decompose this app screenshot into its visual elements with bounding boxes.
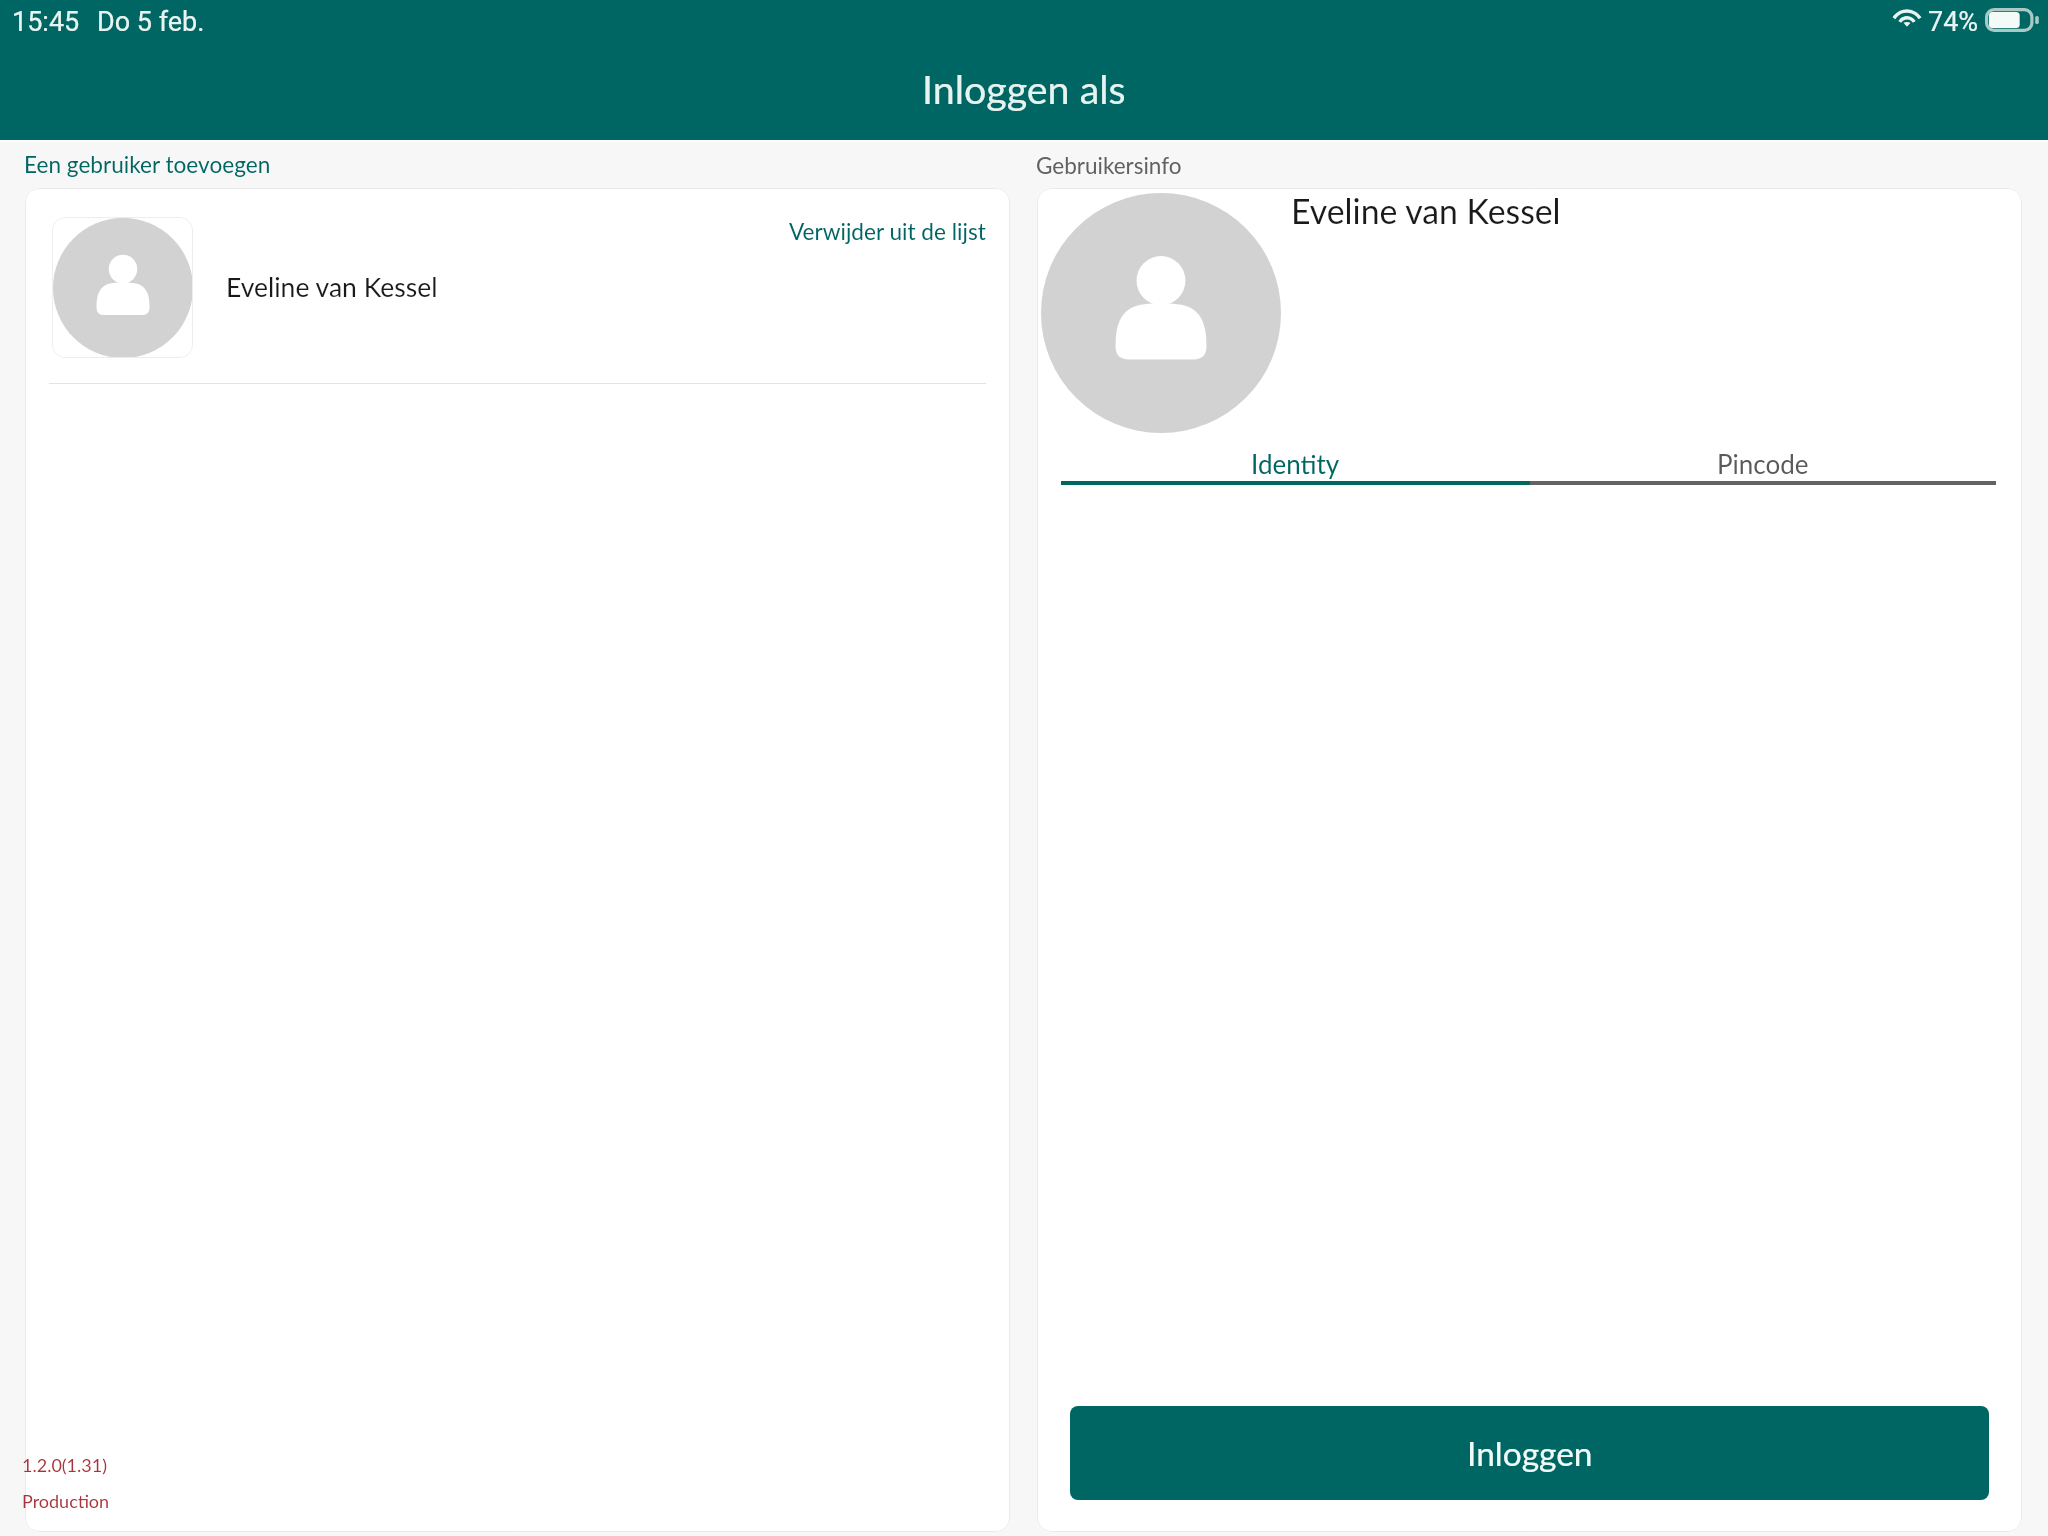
staticText: Verwijder uit de lijst (789, 218, 986, 245)
staticText: Eveline van Kessel (226, 271, 438, 303)
staticText: Gebruikersinfo (1036, 152, 1182, 179)
staticText: Inloggen als (922, 65, 1126, 112)
staticText: 74% (1928, 6, 1979, 38)
other: Wi-Fi (1892, 9, 1922, 30)
staticText: 1.2.0(1.31) (22, 1454, 107, 1476)
staticText: Eveline van Kessel (1291, 191, 1561, 232)
staticText: Een gebruiker toevoegen (24, 151, 271, 178)
staticText: Production (22, 1490, 110, 1512)
button[interactable]: Identity (1061, 448, 1529, 492)
other: Battery 74 percent (1985, 8, 2039, 32)
staticText: Pincode (1717, 448, 1809, 479)
staticText: 15:45 (12, 6, 80, 38)
staticText: Identity (1251, 448, 1340, 479)
staticText: Do 5 feb. (97, 6, 205, 38)
staticText: Inloggen (1467, 1433, 1593, 1473)
button[interactable]: Inloggen (1070, 1406, 1989, 1500)
button[interactable]: Verwijder uit de lijst (779, 211, 995, 251)
button[interactable]: Pincode (1529, 448, 1996, 492)
button[interactable]: Eveline van Kessel (25, 188, 1010, 384)
